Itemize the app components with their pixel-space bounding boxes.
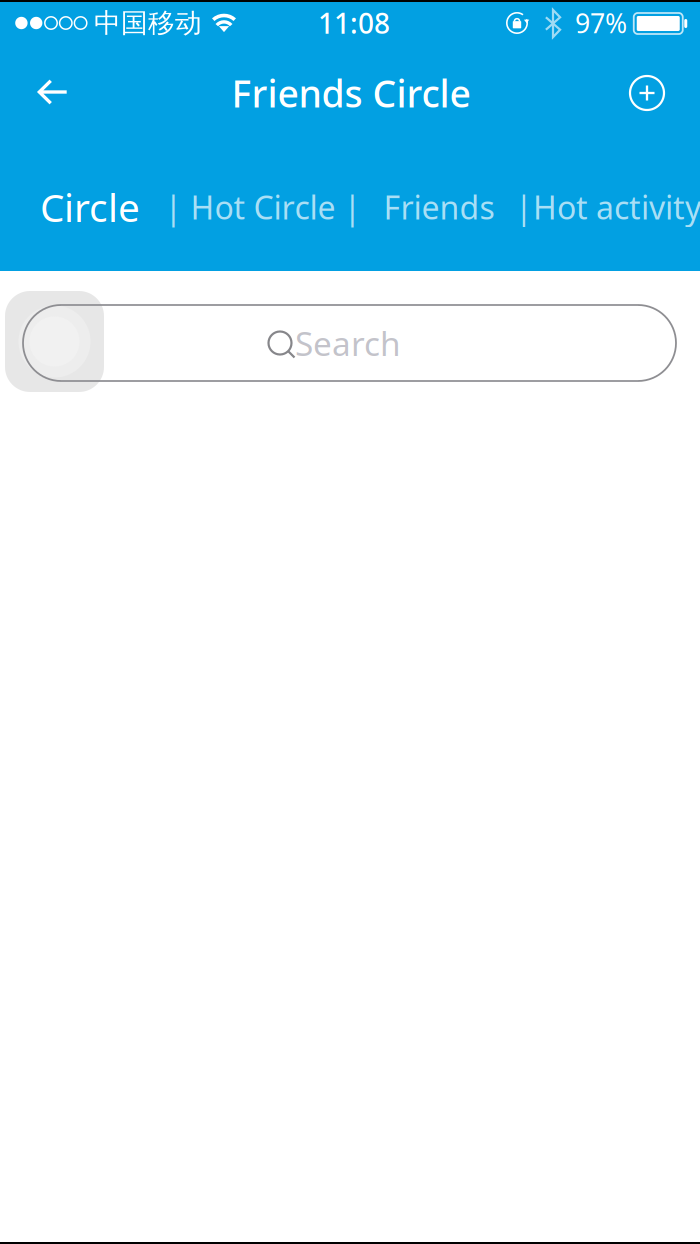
staticText: | Hot Circle | (164, 186, 361, 228)
button[interactable]: Search (23, 305, 676, 381)
staticText: Friends (383, 186, 494, 228)
button[interactable]: Circle (30, 161, 150, 253)
button[interactable]: Back (10, 55, 96, 129)
staticText: |Hot activity (515, 186, 700, 228)
staticText: 97% (575, 5, 627, 41)
staticText: Search (295, 321, 401, 365)
button[interactable]: Add (604, 56, 690, 130)
staticText: Friends Circle (231, 68, 470, 118)
button[interactable]: | Hot Circle | (156, 166, 369, 248)
staticText: 11:08 (318, 4, 390, 42)
button[interactable]: |Hot activity (511, 166, 700, 248)
staticText: Circle (40, 181, 140, 233)
staticText: 中国移动 (94, 7, 202, 39)
button[interactable]: Friends (373, 166, 504, 248)
button[interactable]: Profile (5, 291, 104, 392)
